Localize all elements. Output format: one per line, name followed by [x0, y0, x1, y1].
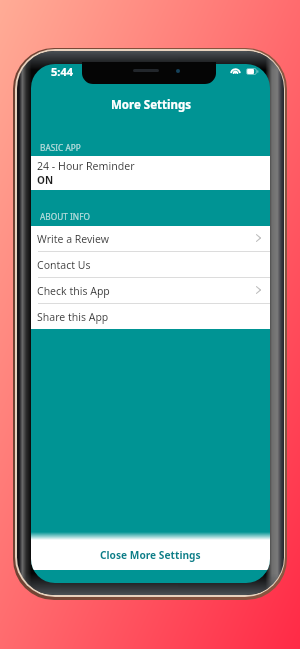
button[interactable]: Check this App — [31, 278, 270, 303]
staticText: ABOUT INFO — [40, 211, 90, 222]
staticText: Write a Review — [37, 232, 110, 246]
other: Wi-Fi signal — [231, 67, 240, 74]
button[interactable]: Contact Us — [31, 252, 270, 277]
staticText: More Settings — [111, 97, 191, 113]
button[interactable]: 24 - Hour Reminder — [31, 156, 270, 190]
staticText: Check this App — [37, 284, 110, 298]
staticText: BASIC APP — [40, 142, 81, 153]
staticText: 5:44 — [51, 64, 73, 78]
staticText: Close More Settings — [100, 548, 201, 562]
button[interactable]: Share this App — [31, 304, 270, 329]
staticText: Contact Us — [37, 258, 91, 272]
staticText: Share this App — [37, 310, 109, 324]
other: Battery — [246, 68, 258, 75]
button[interactable]: Write a Review — [31, 226, 270, 251]
button[interactable]: Close More Settings — [31, 540, 270, 570]
staticText: ON — [37, 173, 54, 187]
staticText: 24 - Hour Reminder — [37, 159, 135, 173]
